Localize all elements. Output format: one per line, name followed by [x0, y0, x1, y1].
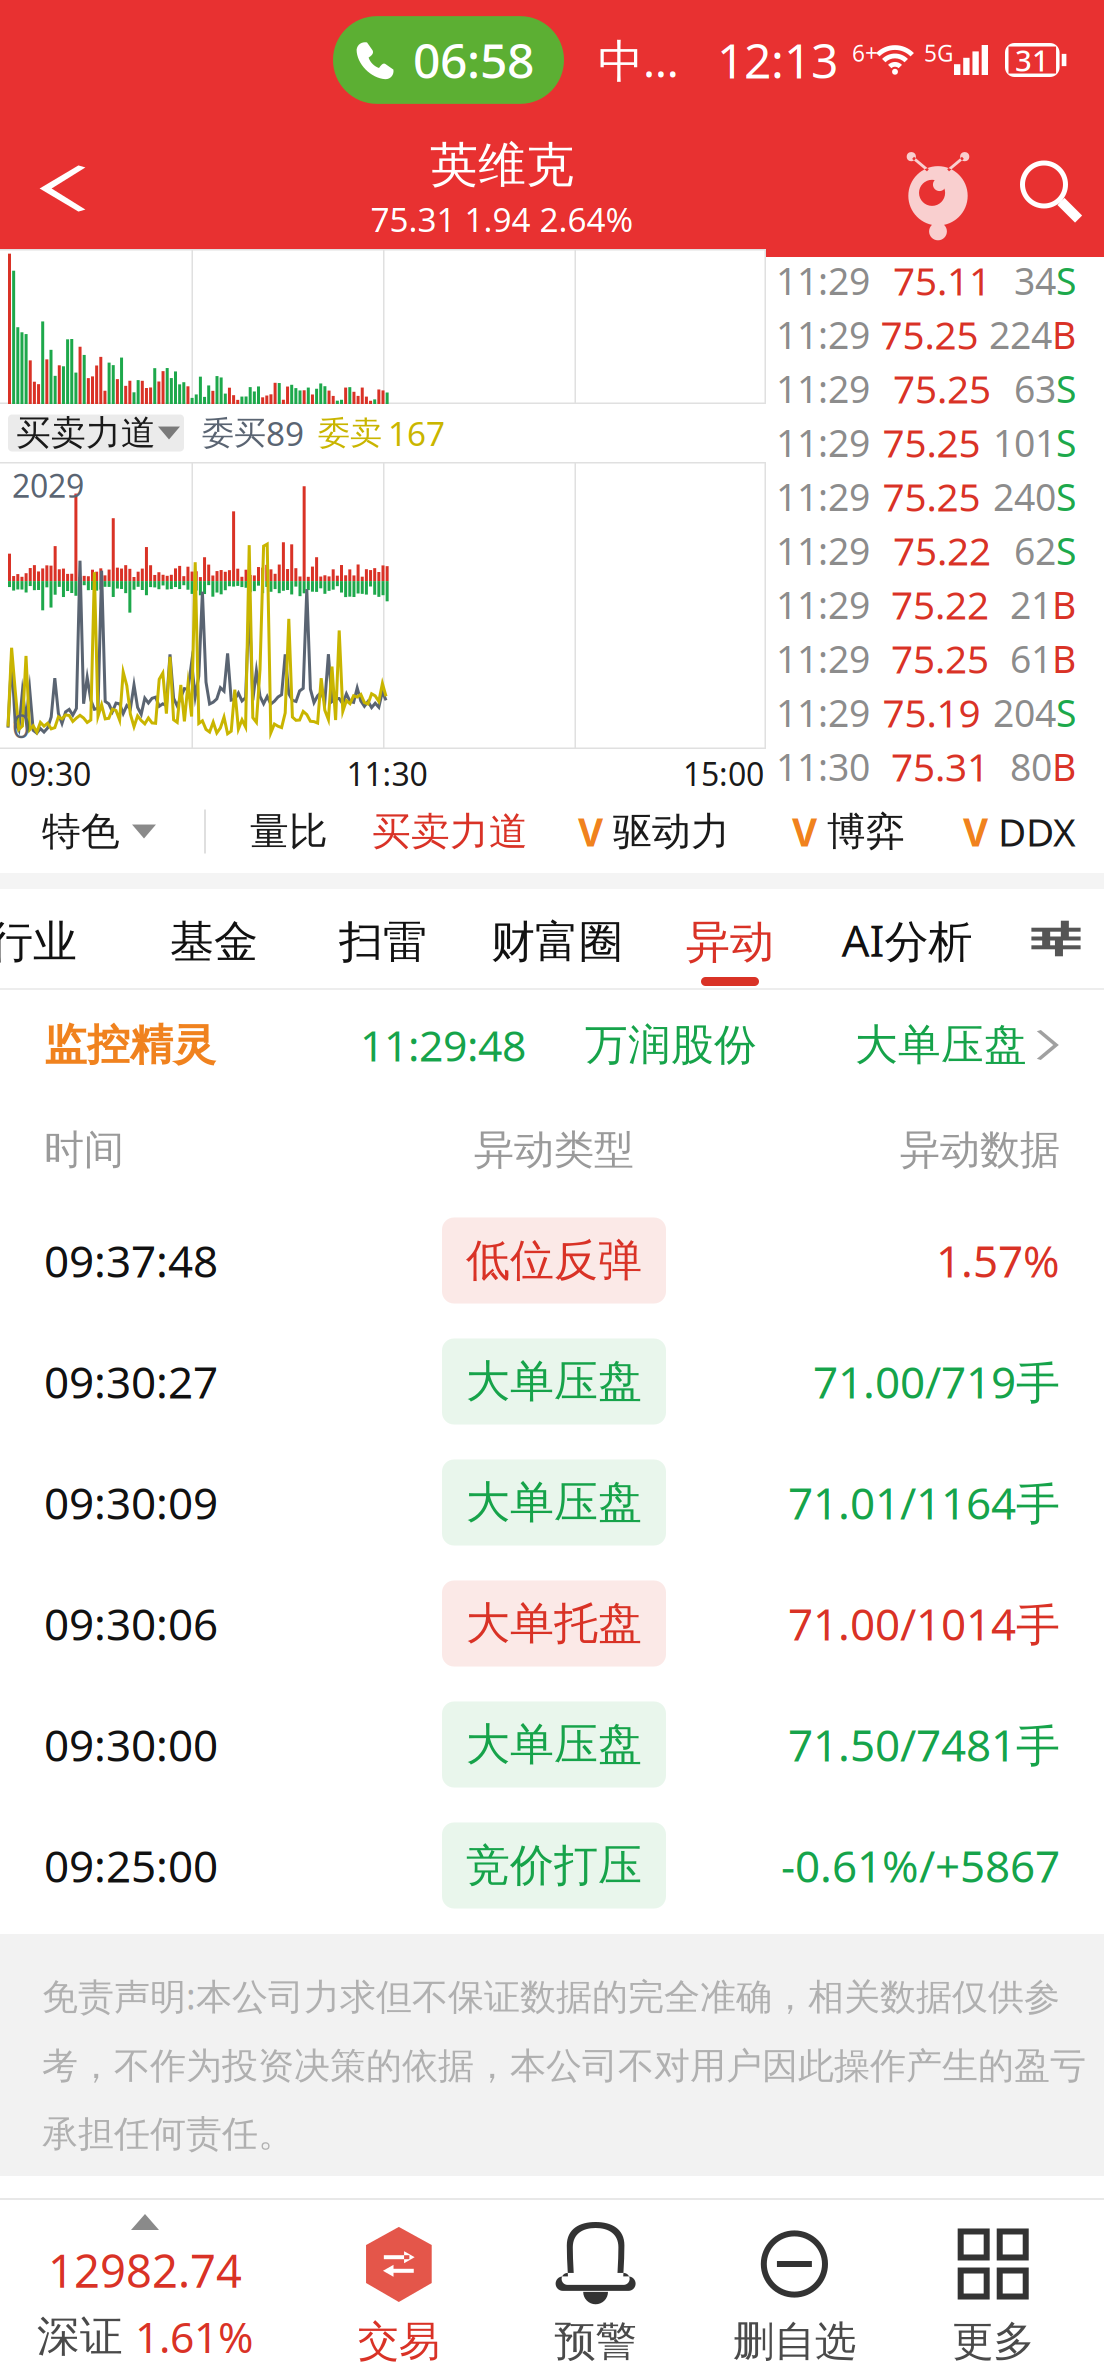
staticText: 11:29: [776, 364, 870, 413]
button[interactable]: 特色: [42, 808, 156, 855]
staticText: 异动数据: [900, 1125, 1060, 1174]
staticText: 万润股份: [585, 1019, 757, 1071]
button[interactable]: 行业: [0, 889, 128, 988]
staticText: 1.61%: [135, 2308, 253, 2365]
staticText: 监控精灵: [44, 1019, 216, 1071]
staticText: DDX: [998, 806, 1076, 857]
button[interactable]: 基金: [128, 889, 300, 988]
staticText: 89: [266, 411, 304, 455]
staticText: 财富圈: [491, 915, 623, 969]
staticText: 71.50/7481手: [788, 1715, 1060, 1774]
staticText: V: [792, 806, 817, 857]
button[interactable]: 09:25:00: [0, 1805, 1104, 1926]
staticText: 75.31 1.94 2.64%: [370, 197, 633, 241]
staticText: 75.22: [893, 525, 991, 576]
button[interactable]: V: [792, 806, 905, 857]
staticText: 75.19: [882, 687, 980, 738]
staticText: 免责声明:本公司力求但不保证数据的完全准确，相关数据仅供参考，不作为投资决策的依…: [42, 1972, 1086, 2156]
staticText: 大单托盘: [466, 1596, 642, 1650]
button[interactable]: 交易: [313, 2200, 485, 2376]
staticText: B: [1052, 742, 1076, 791]
staticText: 09:30:00: [44, 1715, 218, 1774]
staticText: 11:29: [776, 634, 870, 683]
staticText: 75.25: [891, 633, 989, 684]
staticText: 80: [1010, 742, 1052, 791]
button[interactable]: 财富圈: [466, 889, 648, 988]
staticText: 特色: [42, 808, 120, 855]
staticText: 71.00/1014手: [788, 1594, 1060, 1653]
staticText: 博弈: [827, 808, 905, 855]
staticText: V: [963, 806, 988, 857]
staticText: 12982.74: [48, 2240, 242, 2300]
staticText: 删自选: [733, 2316, 856, 2367]
staticText: 5G: [924, 38, 954, 68]
staticText: 31: [1015, 40, 1049, 79]
staticText: 深证: [37, 2310, 123, 2363]
staticText: 时间: [44, 1125, 124, 1174]
staticText: 75.31: [891, 741, 989, 792]
staticText: 买卖力道: [372, 808, 528, 855]
staticText: 11:29: [776, 418, 870, 467]
staticText: 11:29: [776, 688, 870, 737]
staticText: 11:29: [776, 310, 870, 359]
staticText: V: [578, 806, 603, 857]
staticText: 量比: [250, 808, 328, 855]
staticText: 大单压盘: [466, 1717, 642, 1771]
staticText: 0: [12, 704, 30, 747]
staticText: 中…: [598, 30, 679, 90]
staticText: 09:30: [10, 752, 91, 795]
staticText: 11:29: [776, 526, 870, 575]
staticText: 75.25: [893, 363, 991, 414]
staticText: 低位反弹: [466, 1233, 642, 1287]
button[interactable]: 买卖力道: [8, 414, 184, 451]
staticText: 1.57%: [936, 1231, 1060, 1290]
staticText: 11:29: [776, 256, 870, 305]
staticText: 224: [989, 310, 1052, 359]
button[interactable]: 量比: [250, 808, 328, 855]
button[interactable]: 09:30:06: [0, 1563, 1104, 1684]
staticText: 基金: [170, 915, 258, 969]
button[interactable]: 删自选: [706, 2200, 882, 2376]
staticText: 预警: [555, 2316, 637, 2367]
button[interactable]: Back: [0, 120, 120, 257]
button[interactable]: Search: [992, 120, 1104, 257]
button[interactable]: 监控精灵: [0, 990, 1104, 1100]
staticText: 英维克: [430, 136, 574, 195]
button[interactable]: Filter: [1002, 889, 1104, 988]
staticText: 11:29: [776, 580, 870, 629]
button[interactable]: 买卖力道: [372, 808, 528, 855]
staticText: 交易: [358, 2316, 440, 2367]
staticText: B: [1052, 634, 1076, 683]
button[interactable]: 更多: [905, 2200, 1081, 2376]
button[interactable]: 09:30:00: [0, 1684, 1104, 1805]
staticText: 11:29:48: [360, 1017, 526, 1073]
button[interactable]: V: [963, 806, 1076, 857]
button[interactable]: 09:37:48: [0, 1200, 1104, 1321]
button[interactable]: 12982.74: [0, 2200, 290, 2376]
staticText: 15:00: [683, 752, 764, 795]
staticText: S: [1056, 526, 1076, 575]
staticText: S: [1056, 472, 1076, 521]
staticText: 大单压盘: [466, 1475, 642, 1529]
button[interactable]: 预警: [508, 2200, 684, 2376]
staticText: 75.25: [882, 417, 980, 468]
button[interactable]: Assistant: [884, 120, 992, 257]
button[interactable]: 扫雷: [300, 889, 466, 988]
button[interactable]: 09:30:27: [0, 1321, 1104, 1442]
button[interactable]: AI分析: [812, 889, 1002, 988]
staticText: 异动: [686, 915, 774, 969]
button[interactable]: 异动: [648, 889, 812, 988]
staticText: 委卖: [318, 413, 382, 453]
staticText: 75.25: [882, 471, 980, 522]
staticText: 行业: [0, 915, 77, 969]
staticText: 委买: [202, 413, 266, 453]
staticText: 06:58: [413, 28, 534, 92]
staticText: 167: [388, 411, 445, 455]
staticText: S: [1056, 256, 1076, 305]
button[interactable]: V: [578, 806, 730, 857]
staticText: 2029: [12, 464, 84, 506]
staticText: 异动类型: [474, 1125, 634, 1174]
staticText: 75.22: [891, 579, 989, 630]
button[interactable]: 09:30:09: [0, 1442, 1104, 1563]
staticText: 71.00/719手: [813, 1352, 1060, 1411]
